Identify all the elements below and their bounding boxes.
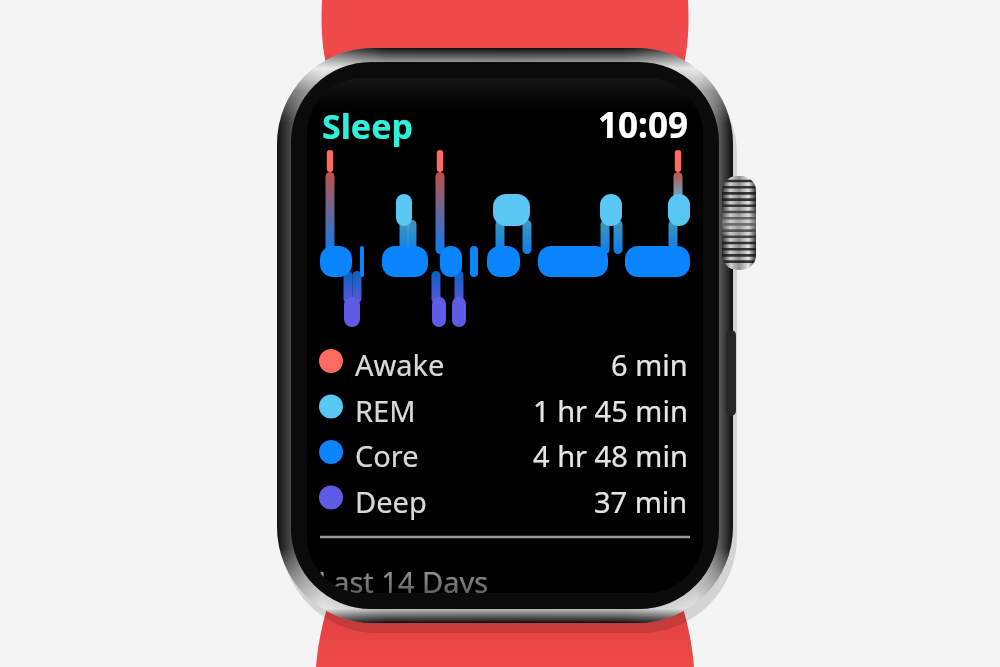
button[interactable]: Apple Watch showing Sleep app <box>0 0 1000 667</box>
